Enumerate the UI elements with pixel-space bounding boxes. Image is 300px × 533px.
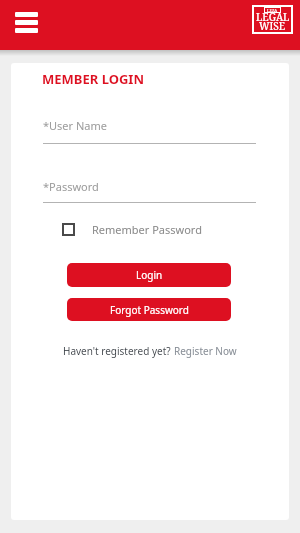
button[interactable]: Register Now (174, 344, 237, 358)
button[interactable]: Remember Password (62, 222, 202, 237)
button[interactable]: Login (67, 263, 231, 287)
staticText: MEMBER LOGIN (42, 70, 144, 88)
staticText: LEGAL (256, 10, 290, 24)
staticText: Forgot Password (110, 303, 189, 317)
button[interactable]: Forgot Password (67, 298, 231, 321)
staticText: Haven't registered yet? (63, 344, 174, 358)
button[interactable]: LEZA (252, 5, 293, 34)
staticText: WISE (259, 19, 286, 33)
staticText: Remember Password (92, 222, 202, 237)
staticText: *User Name (43, 118, 107, 133)
staticText: *Password (43, 179, 99, 194)
staticText: Login (136, 268, 163, 282)
staticText: LEZA (267, 8, 278, 13)
button[interactable] (6, 2, 46, 42)
